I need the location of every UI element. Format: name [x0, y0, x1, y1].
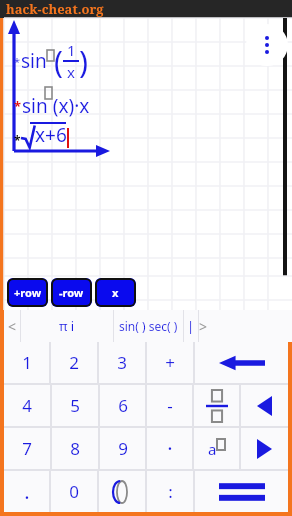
staticText: :: [168, 480, 173, 503]
button[interactable]: 2: [51, 342, 97, 383]
staticText: 1: [22, 351, 32, 374]
button[interactable]: sin( ) sec( ): [114, 310, 183, 342]
staticText: <: [8, 317, 17, 336]
button[interactable]: |: [184, 310, 198, 342]
staticText: sin (x)·x: [22, 93, 90, 119]
button[interactable]: +row: [7, 278, 48, 307]
staticText: 6: [118, 394, 128, 417]
staticText: (: [54, 41, 63, 82]
staticText: 3: [117, 351, 127, 374]
button[interactable]: Move right: [241, 428, 288, 469]
button[interactable]: More options: [246, 24, 288, 66]
staticText: 4: [22, 394, 32, 417]
staticText: 2: [69, 351, 79, 374]
staticText: ): [79, 41, 88, 82]
staticText: *: [14, 54, 21, 69]
staticText: 1: [67, 40, 76, 60]
button[interactable]: Backspace: [195, 342, 288, 383]
staticText: hack-cheat.org: [6, 0, 104, 18]
button[interactable]: +: [147, 342, 193, 383]
button[interactable]: 1: [4, 342, 49, 383]
staticText: sin( ) sec( ): [119, 318, 178, 334]
button[interactable]: Fraction: [194, 385, 239, 426]
staticText: x: [112, 285, 119, 300]
staticText: 9: [118, 437, 128, 460]
button[interactable]: :: [147, 471, 193, 512]
staticText: x: [67, 62, 75, 82]
button[interactable]: -row: [51, 278, 92, 307]
staticText: 0: [69, 480, 79, 503]
staticText: *: [14, 97, 22, 115]
staticText: sin: [21, 48, 47, 74]
button[interactable]: ·: [147, 428, 192, 469]
staticText: x+6: [35, 122, 67, 148]
button[interactable]: 8: [52, 428, 98, 469]
staticText: a: [208, 439, 217, 459]
staticText: >: [199, 317, 207, 336]
button[interactable]: Parentheses: [99, 471, 145, 512]
staticText: -: [167, 394, 173, 417]
button[interactable]: >: [199, 310, 207, 342]
button[interactable]: π i: [21, 310, 113, 342]
button[interactable]: 3: [99, 342, 145, 383]
button[interactable]: 9: [100, 428, 145, 469]
staticText: *: [14, 132, 21, 148]
button[interactable]: Power: [194, 428, 239, 469]
staticText: ·: [167, 435, 173, 462]
staticText: 8: [70, 437, 80, 460]
button[interactable]: 0: [51, 471, 97, 512]
button[interactable]: 7: [4, 428, 50, 469]
staticText: |: [187, 317, 195, 335]
button[interactable]: Move left: [241, 385, 288, 426]
button[interactable]: <: [4, 310, 20, 342]
staticText: +row: [14, 285, 42, 300]
button[interactable]: 6: [100, 385, 145, 426]
button[interactable]: .: [4, 471, 49, 512]
button[interactable]: 4: [4, 385, 50, 426]
staticText: -row: [59, 285, 84, 300]
staticText: .: [24, 478, 30, 505]
staticText: 7: [22, 437, 32, 460]
button[interactable]: -: [147, 385, 192, 426]
staticText: +: [165, 351, 175, 374]
button[interactable]: Equals: [195, 471, 288, 512]
staticText: 5: [70, 394, 80, 417]
staticText: π i: [59, 317, 75, 335]
button[interactable]: 5: [52, 385, 98, 426]
button[interactable]: x: [95, 278, 136, 307]
